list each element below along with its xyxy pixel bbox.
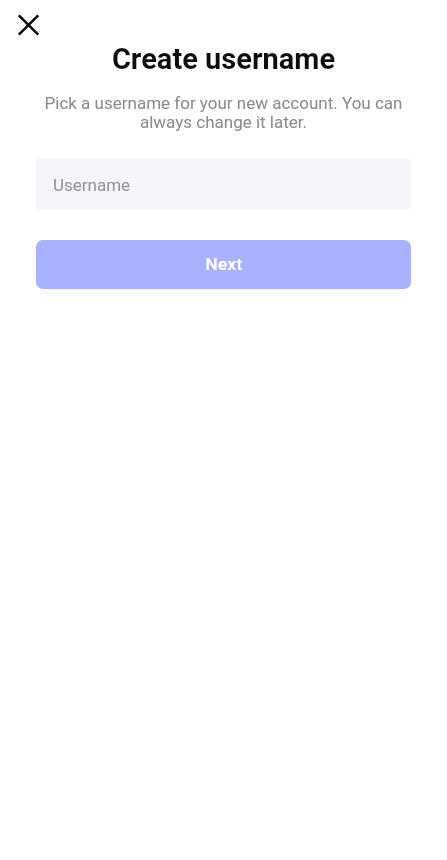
- staticText: Next: [205, 254, 243, 274]
- staticText: Create username: [0, 42, 447, 76]
- staticText: Username: [53, 175, 131, 195]
- staticText: Pick a username for your new account. Yo…: [40, 93, 407, 132]
- button[interactable]: Next: [36, 240, 411, 289]
- button[interactable]: Username: [36, 158, 411, 210]
- button[interactable]: Close: [5, 2, 51, 48]
